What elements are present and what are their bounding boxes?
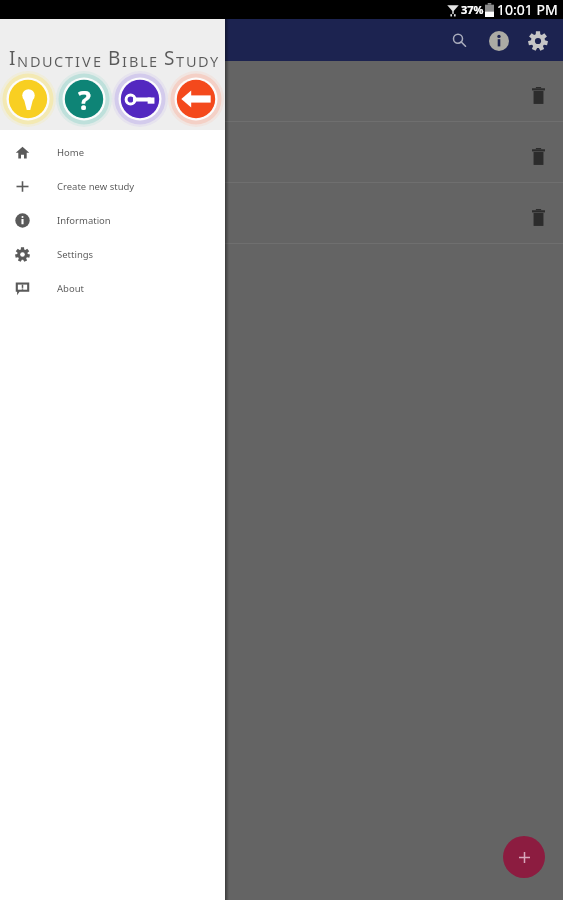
button[interactable]: Observation (0, 71, 56, 127)
button[interactable]: Application (112, 71, 168, 127)
staticText: Create new study (57, 180, 135, 193)
staticText: C (54, 51, 65, 71)
button[interactable]: Settings (518, 21, 557, 60)
button[interactable]: Home (0, 135, 225, 169)
staticText: L (140, 51, 149, 71)
staticText: Home (57, 146, 85, 159)
staticText: B (108, 45, 122, 71)
staticText: Settings (57, 248, 94, 261)
staticText: T (65, 51, 75, 71)
staticText: B (129, 51, 140, 71)
button[interactable]: Settings (0, 237, 225, 271)
button[interactable]: Search (440, 21, 479, 60)
staticText: ? (78, 81, 91, 118)
button[interactable]: Study 3 (0, 183, 563, 244)
staticText: V (82, 51, 93, 71)
staticText: E (93, 51, 103, 71)
staticText: I (9, 45, 17, 71)
button[interactable]: Information (479, 21, 518, 60)
button[interactable]: Delete (520, 139, 556, 175)
button[interactable]: Create new study (0, 169, 225, 203)
button[interactable]: Interpretation (56, 71, 112, 127)
staticText: D (198, 51, 210, 71)
staticText: I (122, 51, 129, 71)
staticText: S (164, 45, 176, 71)
staticText: About (57, 282, 84, 295)
button[interactable]: Add (503, 836, 545, 878)
button[interactable]: Study 1 (0, 61, 563, 122)
staticText: 37% (461, 2, 484, 17)
staticText: 10:01 PM (497, 0, 558, 19)
button[interactable]: Delete (520, 78, 556, 114)
button[interactable]: About (0, 271, 225, 305)
staticText: I (75, 51, 82, 71)
staticText: U (186, 51, 198, 71)
staticText: Y (210, 51, 220, 71)
staticText: Information (57, 214, 111, 227)
button[interactable]: Delete (520, 200, 556, 236)
button[interactable]: Study 2 (0, 122, 563, 183)
button[interactable]: Information (0, 203, 225, 237)
button[interactable]: Back (168, 71, 224, 127)
staticText: E (149, 51, 159, 71)
staticText: N (17, 51, 30, 71)
staticText: U (42, 51, 54, 71)
staticText: T (176, 51, 186, 71)
staticText: D (30, 51, 42, 71)
